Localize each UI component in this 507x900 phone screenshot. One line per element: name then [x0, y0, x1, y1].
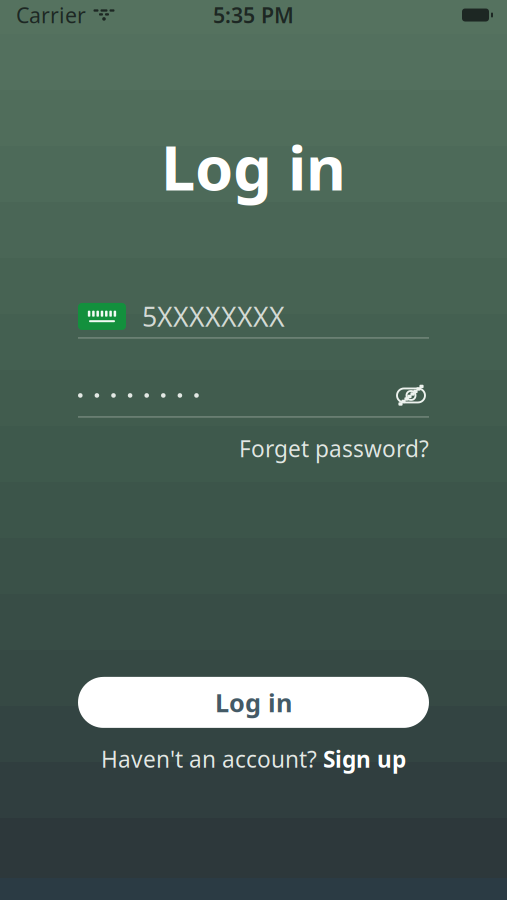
staticText: Haven't an account? — [101, 744, 317, 774]
staticText: 5XXXXXXXX — [142, 299, 285, 334]
staticText: Forget password? — [239, 433, 429, 463]
button[interactable]: Haven't an account? — [101, 744, 406, 774]
staticText: Carrier — [16, 1, 86, 29]
staticText: 5:35 PM — [213, 1, 294, 29]
button[interactable]: Forget password? — [239, 429, 429, 467]
staticText: Log in — [215, 686, 292, 719]
staticText: Sign up — [323, 744, 406, 774]
button[interactable]: Show password — [393, 377, 429, 413]
button[interactable]: Log in — [78, 677, 429, 728]
staticText: Log in — [161, 126, 346, 207]
